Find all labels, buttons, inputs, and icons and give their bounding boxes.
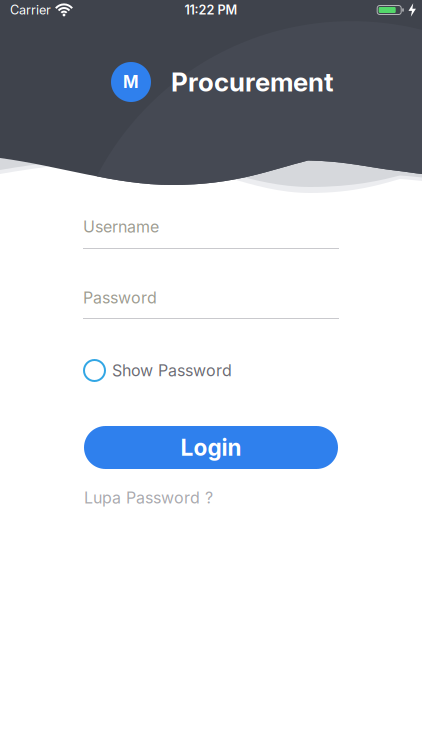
staticText: 11:22 PM (184, 2, 237, 18)
textField[interactable]: Username (83, 217, 339, 236)
staticText: Username (83, 217, 159, 236)
staticText: Password (83, 288, 157, 307)
staticText: Login (180, 434, 241, 461)
staticText: Show Password (112, 361, 232, 380)
button[interactable]: Lupa Password ? (84, 488, 213, 507)
button[interactable]: Show Password (84, 360, 232, 381)
secureTextField[interactable]: Password (83, 288, 339, 307)
button[interactable]: Login (84, 426, 338, 469)
staticText: Procurement (171, 66, 334, 98)
staticText: Lupa Password ? (84, 488, 213, 507)
staticText: Carrier (10, 2, 51, 18)
staticText: M (123, 72, 139, 92)
